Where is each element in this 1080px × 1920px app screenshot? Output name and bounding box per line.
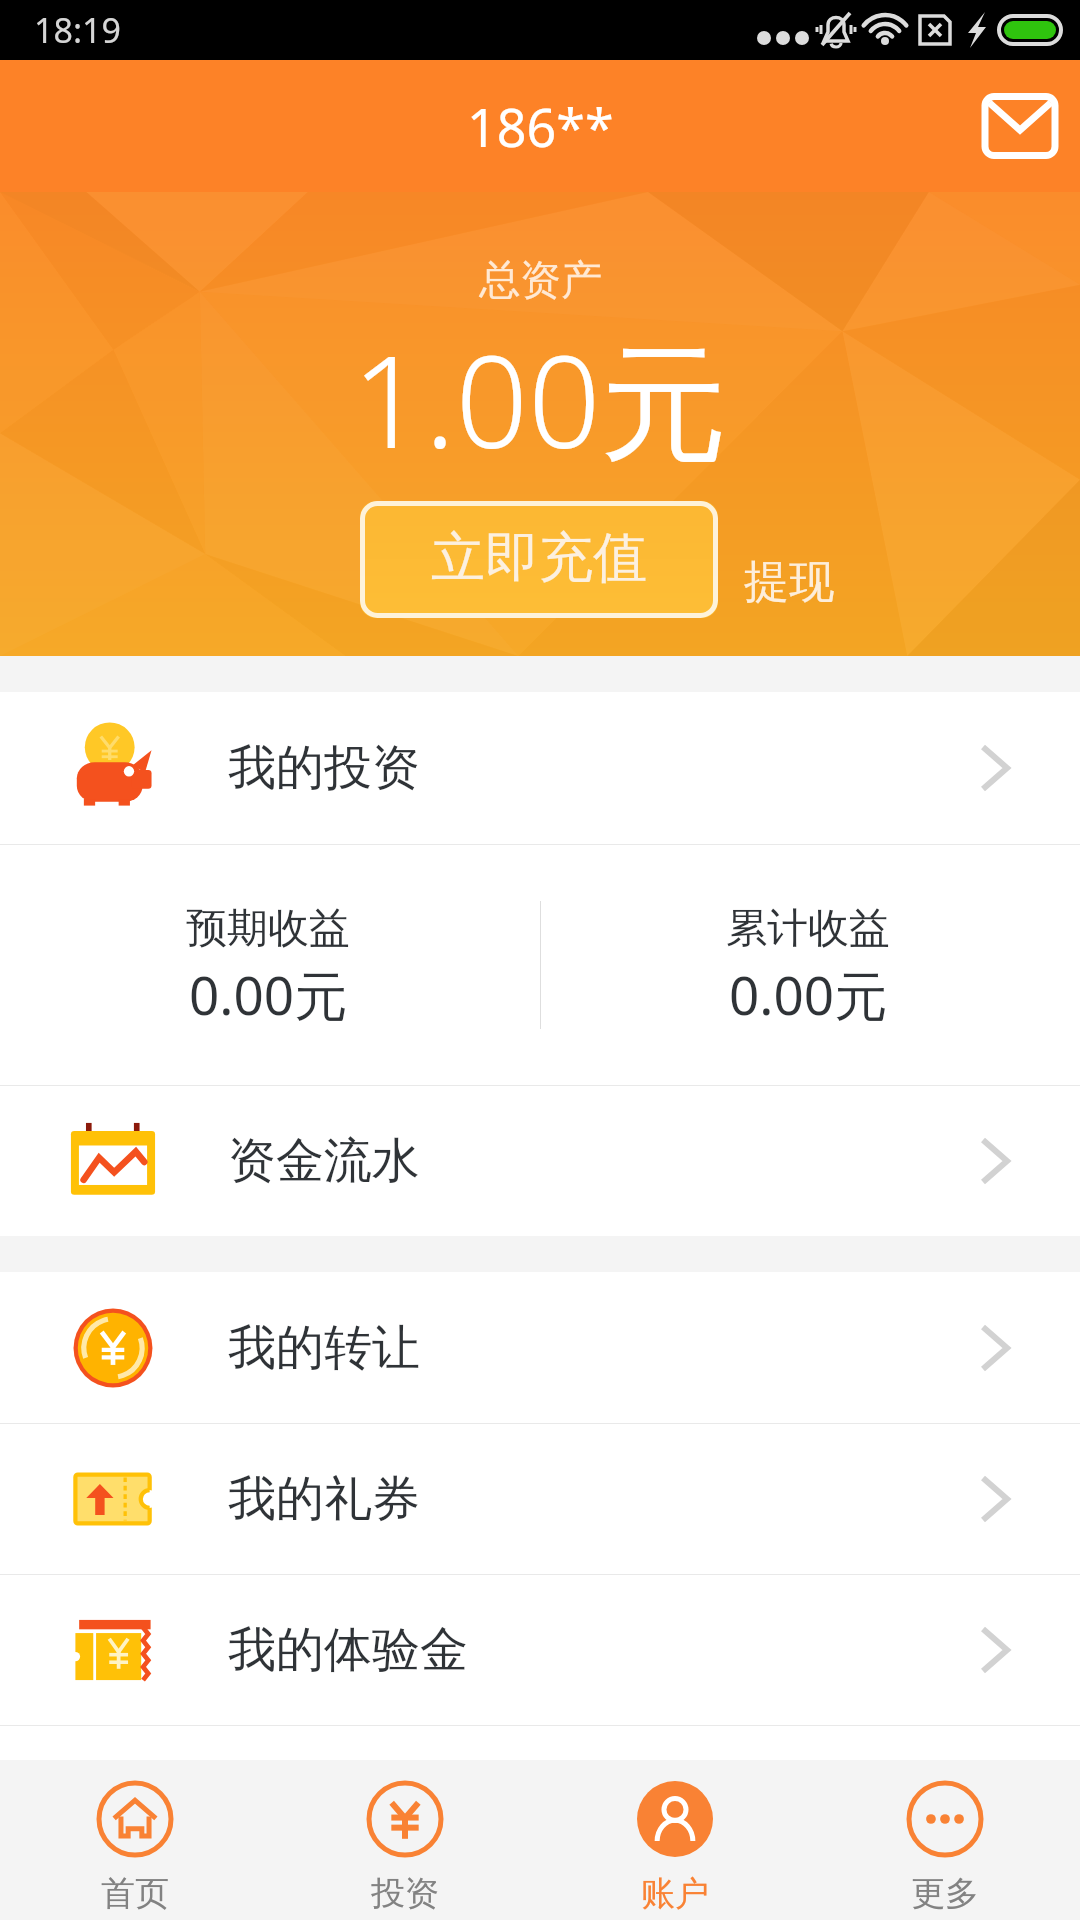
staticText: 0.00元 — [729, 958, 888, 1030]
button[interactable]: 我的体验金 — [0, 1575, 1080, 1725]
button[interactable]: 投资 — [270, 1760, 540, 1920]
staticText: 我的体验金 — [228, 1620, 468, 1680]
button[interactable]: 首页 — [0, 1760, 270, 1920]
button[interactable]: 资金流水 — [0, 1086, 1080, 1236]
staticText: 总资产 — [479, 255, 602, 307]
staticText: 更多 — [911, 1872, 979, 1915]
staticText: 0.00元 — [189, 958, 348, 1030]
staticText: 账户 — [641, 1872, 709, 1915]
button[interactable]: 我的转让 — [0, 1272, 1080, 1423]
staticText: 1.00元 — [352, 312, 728, 485]
staticText: 提现 — [744, 554, 834, 611]
staticText: 立即充值 — [431, 524, 647, 592]
staticText: 资金流水 — [228, 1131, 420, 1191]
staticText: 我的礼券 — [228, 1469, 420, 1529]
staticText: 投资 — [371, 1872, 439, 1915]
staticText: 预期收益 — [186, 903, 350, 955]
button[interactable]: 提现 — [744, 554, 834, 611]
button[interactable]: Messages — [960, 66, 1080, 186]
staticText: 首页 — [101, 1872, 169, 1915]
staticText: 我的转让 — [228, 1318, 420, 1378]
staticText: 累计收益 — [726, 903, 890, 955]
staticText: 186** — [467, 91, 614, 162]
button[interactable]: 我的礼券 — [0, 1424, 1080, 1574]
staticText: 我的投资 — [228, 738, 420, 798]
button[interactable]: 账户 — [540, 1760, 810, 1920]
button[interactable]: 更多 — [810, 1760, 1080, 1920]
button[interactable]: 立即充值 — [360, 501, 718, 618]
button[interactable]: 我的投资 — [0, 692, 1080, 844]
staticText: 18:19 — [34, 7, 121, 53]
